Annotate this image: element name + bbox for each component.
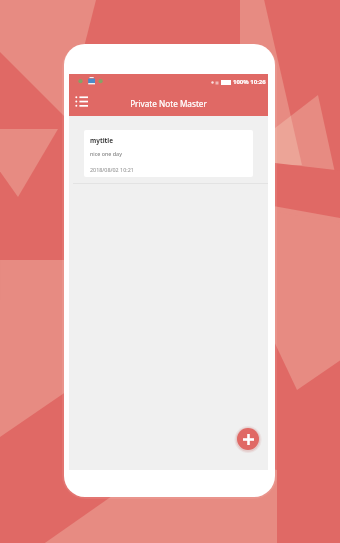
- button[interactable]: Menu: [72, 92, 91, 111]
- staticText: Private Note Master: [130, 98, 207, 109]
- staticText: nice one day: [90, 150, 122, 157]
- button[interactable]: mytitle: [84, 130, 253, 177]
- staticText: mytitle: [90, 136, 114, 145]
- staticText: 100% 10:26: [233, 78, 266, 86]
- button[interactable]: Add note: [237, 428, 259, 450]
- staticText: 2018/08/02 10:21: [90, 166, 134, 173]
